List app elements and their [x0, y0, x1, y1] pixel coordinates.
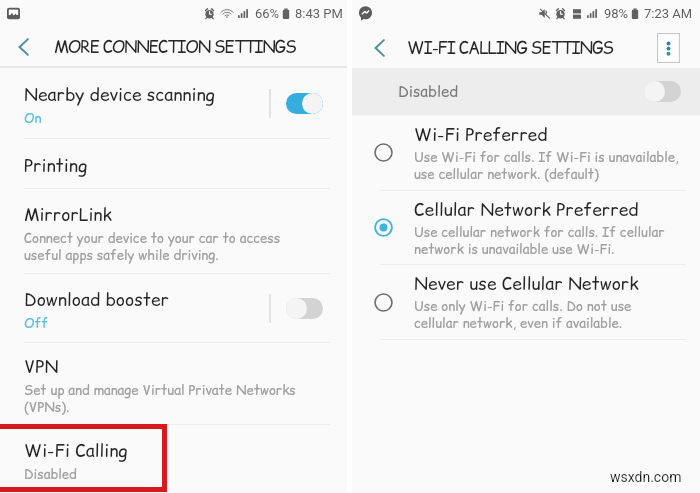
- button[interactable]: MirrorLink: [0, 189, 347, 273]
- button[interactable]: Never use Cellular Network: [352, 265, 700, 339]
- staticText: Use cellular network for calls. If cellu…: [414, 223, 665, 258]
- staticText: Wi-Fi Preferred: [414, 123, 548, 147]
- button[interactable]: Download booster: [0, 274, 347, 342]
- staticText: Printing: [24, 154, 88, 178]
- staticText: WI-FI CALLING SETTINGS: [407, 36, 613, 60]
- staticText: 66%: [255, 6, 280, 21]
- button[interactable]: More options: [657, 33, 680, 63]
- staticText: 7:23 AM: [644, 6, 693, 21]
- staticText: Connect your device to your car to acces…: [24, 229, 281, 264]
- staticText: MORE CONNECTION SETTINGS: [54, 35, 296, 59]
- button[interactable]: Wi-Fi Preferred: [352, 115, 700, 190]
- staticText: 8:43 PM: [295, 6, 343, 21]
- staticText: Disabled: [398, 81, 459, 102]
- staticText: wsxdn.com: [610, 469, 682, 485]
- staticText: Use only Wi-Fi for calls. Do not use cel…: [414, 297, 632, 332]
- button[interactable]: Turn off Nearby device scanning: [286, 93, 323, 114]
- button[interactable]: Navigate up: [364, 33, 394, 63]
- staticText: Use Wi-Fi for calls. If Wi-Fi is unavail…: [414, 148, 679, 183]
- staticText: Download booster: [24, 288, 169, 312]
- button[interactable]: Wi-Fi Calling: [0, 425, 347, 493]
- button[interactable]: Nearby device scanning: [0, 68, 347, 138]
- staticText: 98%: [604, 6, 629, 21]
- staticText: Off: [24, 314, 48, 332]
- button[interactable]: Printing: [0, 139, 347, 188]
- staticText: On: [24, 109, 42, 127]
- staticText: Nearby device scanning: [24, 83, 215, 107]
- staticText: MirrorLink: [24, 203, 112, 227]
- staticText: VPN: [24, 355, 59, 379]
- staticText: Wi-Fi Calling: [24, 439, 128, 463]
- button[interactable]: Navigate up: [8, 32, 38, 62]
- button[interactable]: VPN: [0, 343, 347, 424]
- staticText: Never use Cellular Network: [414, 272, 639, 296]
- staticText: Disabled: [24, 465, 77, 483]
- button[interactable]: Enable Wi-Fi Calling: [644, 81, 681, 102]
- staticText: Cellular Network Preferred: [414, 198, 639, 222]
- button[interactable]: Turn on Download booster: [286, 298, 323, 319]
- staticText: Set up and manage Virtual Private Networ…: [24, 381, 296, 416]
- button[interactable]: Cellular Network Preferred: [352, 191, 700, 264]
